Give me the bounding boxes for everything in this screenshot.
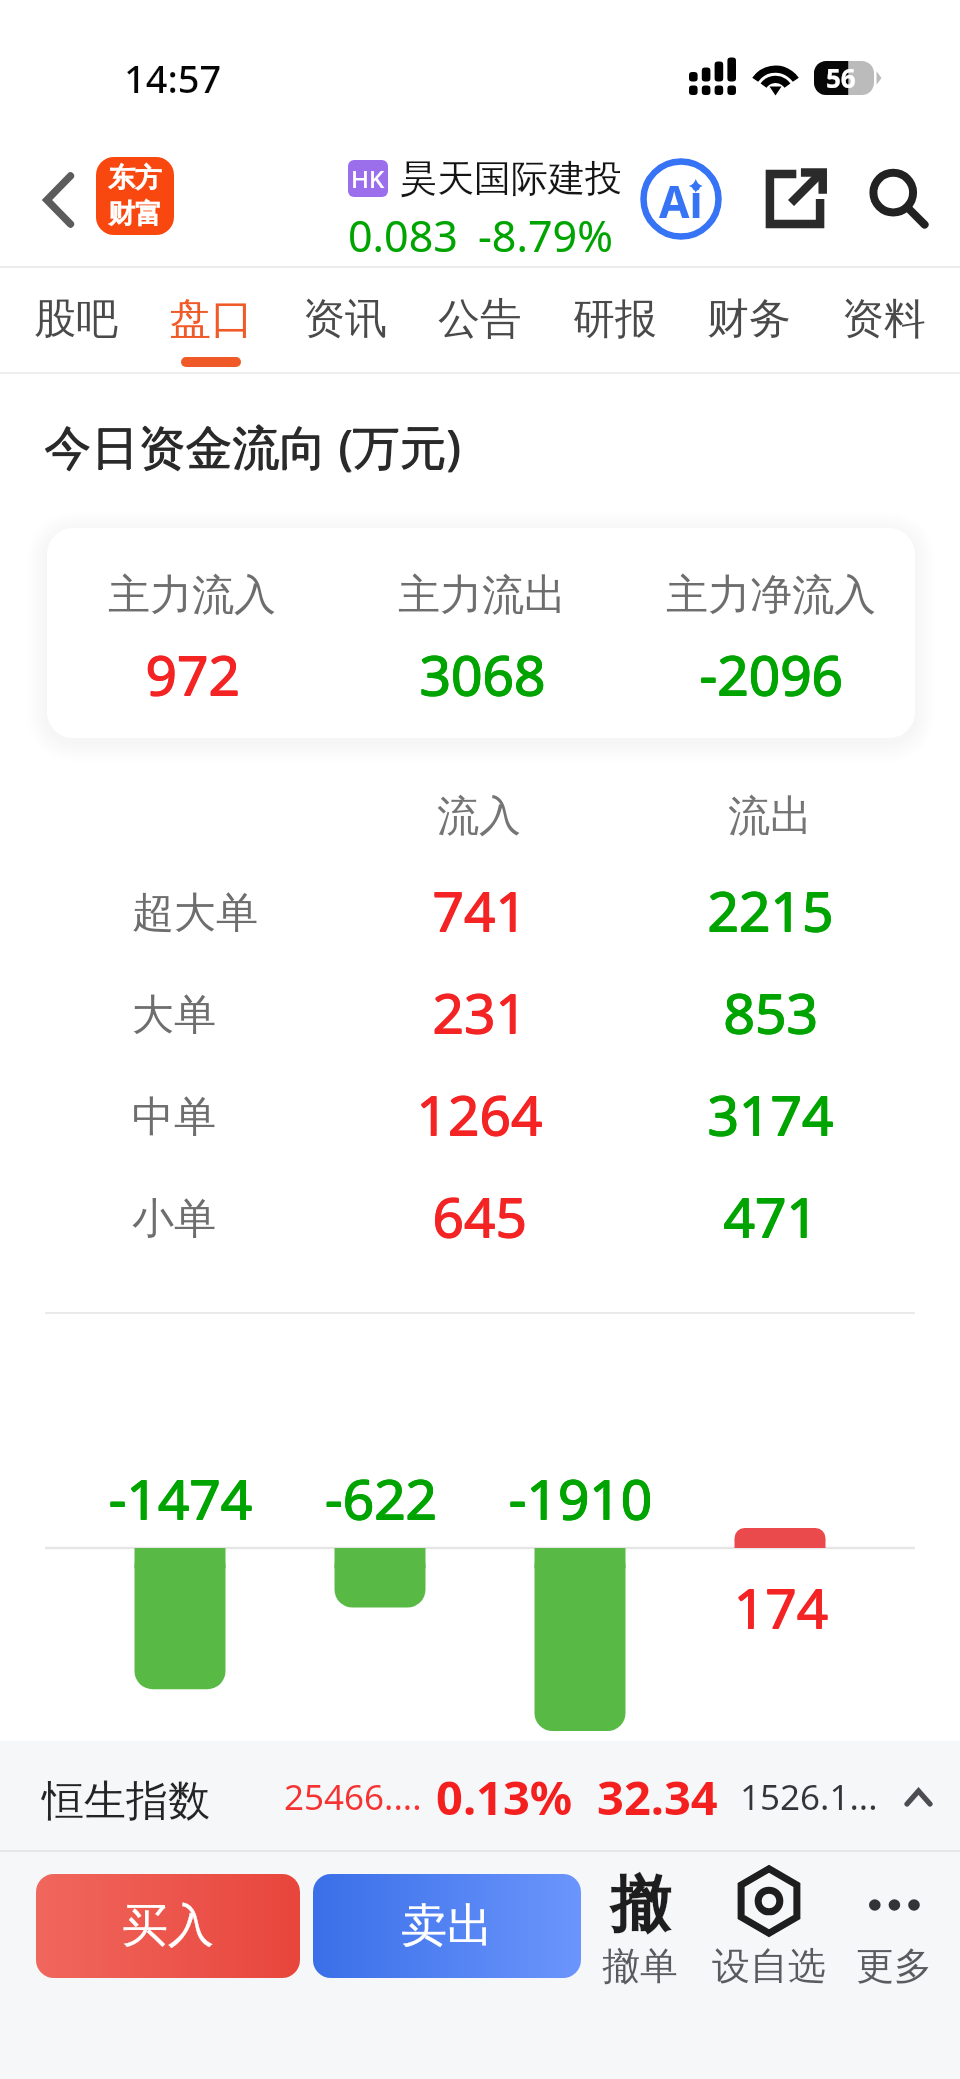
- button[interactable]: Expand: [890, 1769, 946, 1825]
- staticText: -2096: [699, 636, 843, 711]
- staticText: 853: [724, 974, 819, 1049]
- staticText: 32.34: [597, 1765, 718, 1829]
- staticText: 撤单: [602, 1942, 678, 1990]
- button[interactable]: 资讯: [297, 268, 393, 367]
- staticText: -622: [325, 1460, 438, 1526]
- button[interactable]: 资料: [836, 268, 932, 367]
- staticText: 2215: [708, 872, 834, 947]
- button[interactable]: 买入: [36, 1874, 300, 1978]
- staticText: -1474: [108, 1461, 252, 1527]
- staticText: 财富: [108, 197, 162, 231]
- staticText: 741: [433, 872, 528, 947]
- staticText: 853: [723, 975, 818, 1050]
- staticText: 研报: [573, 293, 657, 346]
- button[interactable]: Back: [22, 163, 96, 237]
- staticText: 资讯: [303, 293, 387, 346]
- button[interactable]: 公告: [432, 268, 528, 367]
- button[interactable]: 盘口: [163, 268, 259, 367]
- staticText: 3068: [419, 636, 545, 711]
- button[interactable]: 主力流入: [47, 528, 915, 738]
- staticText: 3174: [707, 1076, 833, 1151]
- staticText: 1526.1...: [740, 1773, 878, 1821]
- staticText: 972: [146, 636, 241, 711]
- staticText: 471: [724, 1179, 819, 1254]
- staticText: 资料: [842, 293, 926, 346]
- button[interactable]: 卖出: [313, 1874, 581, 1978]
- staticText: 公告: [438, 293, 522, 346]
- staticText: 今日资金流向 (万元): [44, 415, 461, 479]
- staticText: -1910: [508, 1460, 652, 1526]
- button[interactable]: 超大单: [0, 863, 960, 963]
- staticText: 卖出: [401, 1897, 493, 1955]
- staticText: -1910: [508, 1461, 652, 1527]
- staticText: 1264: [417, 1076, 543, 1151]
- staticText: -622: [324, 1460, 437, 1526]
- staticText: 3068: [420, 636, 546, 711]
- staticText: 174: [734, 1569, 829, 1635]
- button[interactable]: 大单: [0, 965, 960, 1065]
- staticText: 恒生指数: [42, 1775, 210, 1828]
- staticText: 972: [145, 636, 240, 711]
- button[interactable]: 财务: [701, 268, 797, 367]
- staticText: 174: [734, 1570, 829, 1636]
- staticText: 流出: [728, 790, 812, 842]
- staticText: 231: [433, 974, 528, 1049]
- staticText: -1910: [509, 1460, 653, 1526]
- staticText: 流入: [437, 790, 521, 842]
- staticText: -1474: [109, 1461, 253, 1527]
- staticText: 大单: [132, 989, 216, 1042]
- staticText: -1910: [509, 1461, 653, 1527]
- button[interactable]: Share: [748, 152, 842, 246]
- staticText: 1264: [416, 1077, 542, 1152]
- staticText: 昊天国际建投: [400, 155, 622, 202]
- button[interactable]: 更多: [838, 1860, 950, 1990]
- staticText: 645: [433, 1178, 528, 1253]
- staticText: 231: [432, 974, 527, 1049]
- staticText: 14:57: [124, 52, 222, 104]
- staticText: 1264: [416, 1076, 542, 1151]
- staticText: 56: [826, 60, 856, 94]
- staticText: 2215: [707, 872, 833, 947]
- staticText: -2096: [699, 637, 843, 712]
- staticText: 1264: [417, 1077, 543, 1152]
- staticText: 盘口: [169, 293, 253, 346]
- staticText: 3174: [707, 1077, 833, 1152]
- staticText: 更多: [856, 1942, 932, 1990]
- staticText: 中单: [132, 1091, 216, 1144]
- staticText: 东方: [108, 161, 162, 195]
- button[interactable]: Search: [852, 152, 946, 246]
- staticText: 2215: [708, 873, 834, 948]
- staticText: 撤: [610, 1866, 671, 1943]
- staticText: -2096: [700, 637, 844, 712]
- staticText: 设自选: [712, 1942, 826, 1990]
- staticText: 645: [432, 1179, 527, 1254]
- staticText: 主力流出: [398, 569, 566, 622]
- staticText: 645: [432, 1178, 527, 1253]
- staticText: 231: [432, 975, 527, 1050]
- staticText: 今日资金流向 (万元): [45, 414, 462, 478]
- staticText: 3174: [708, 1076, 834, 1151]
- staticText: 471: [724, 1178, 819, 1253]
- staticText: 0.083: [348, 206, 458, 265]
- staticText: 今日资金流向 (万元): [44, 414, 461, 478]
- button[interactable]: 股吧: [28, 268, 124, 367]
- button[interactable]: 小单: [0, 1169, 960, 1269]
- staticText: 25466....: [284, 1773, 422, 1821]
- staticText: 0.13%: [436, 1765, 573, 1829]
- button[interactable]: 东方: [96, 157, 174, 235]
- staticText: 3068: [419, 637, 545, 712]
- staticText: -622: [325, 1461, 438, 1527]
- button[interactable]: AI assistant: [634, 152, 728, 246]
- staticText: 超大单: [132, 887, 258, 940]
- button[interactable]: 撤: [584, 1860, 696, 1990]
- staticText: -2096: [700, 636, 844, 711]
- button[interactable]: 设自选: [704, 1860, 834, 1990]
- staticText: 471: [723, 1178, 818, 1253]
- button[interactable]: 中单: [0, 1067, 960, 1167]
- button[interactable]: 研报: [567, 268, 663, 367]
- staticText: 741: [432, 873, 527, 948]
- staticText: 主力流入: [108, 569, 276, 622]
- staticText: HK: [351, 162, 385, 195]
- staticText: -1474: [109, 1460, 253, 1526]
- staticText: 645: [433, 1179, 528, 1254]
